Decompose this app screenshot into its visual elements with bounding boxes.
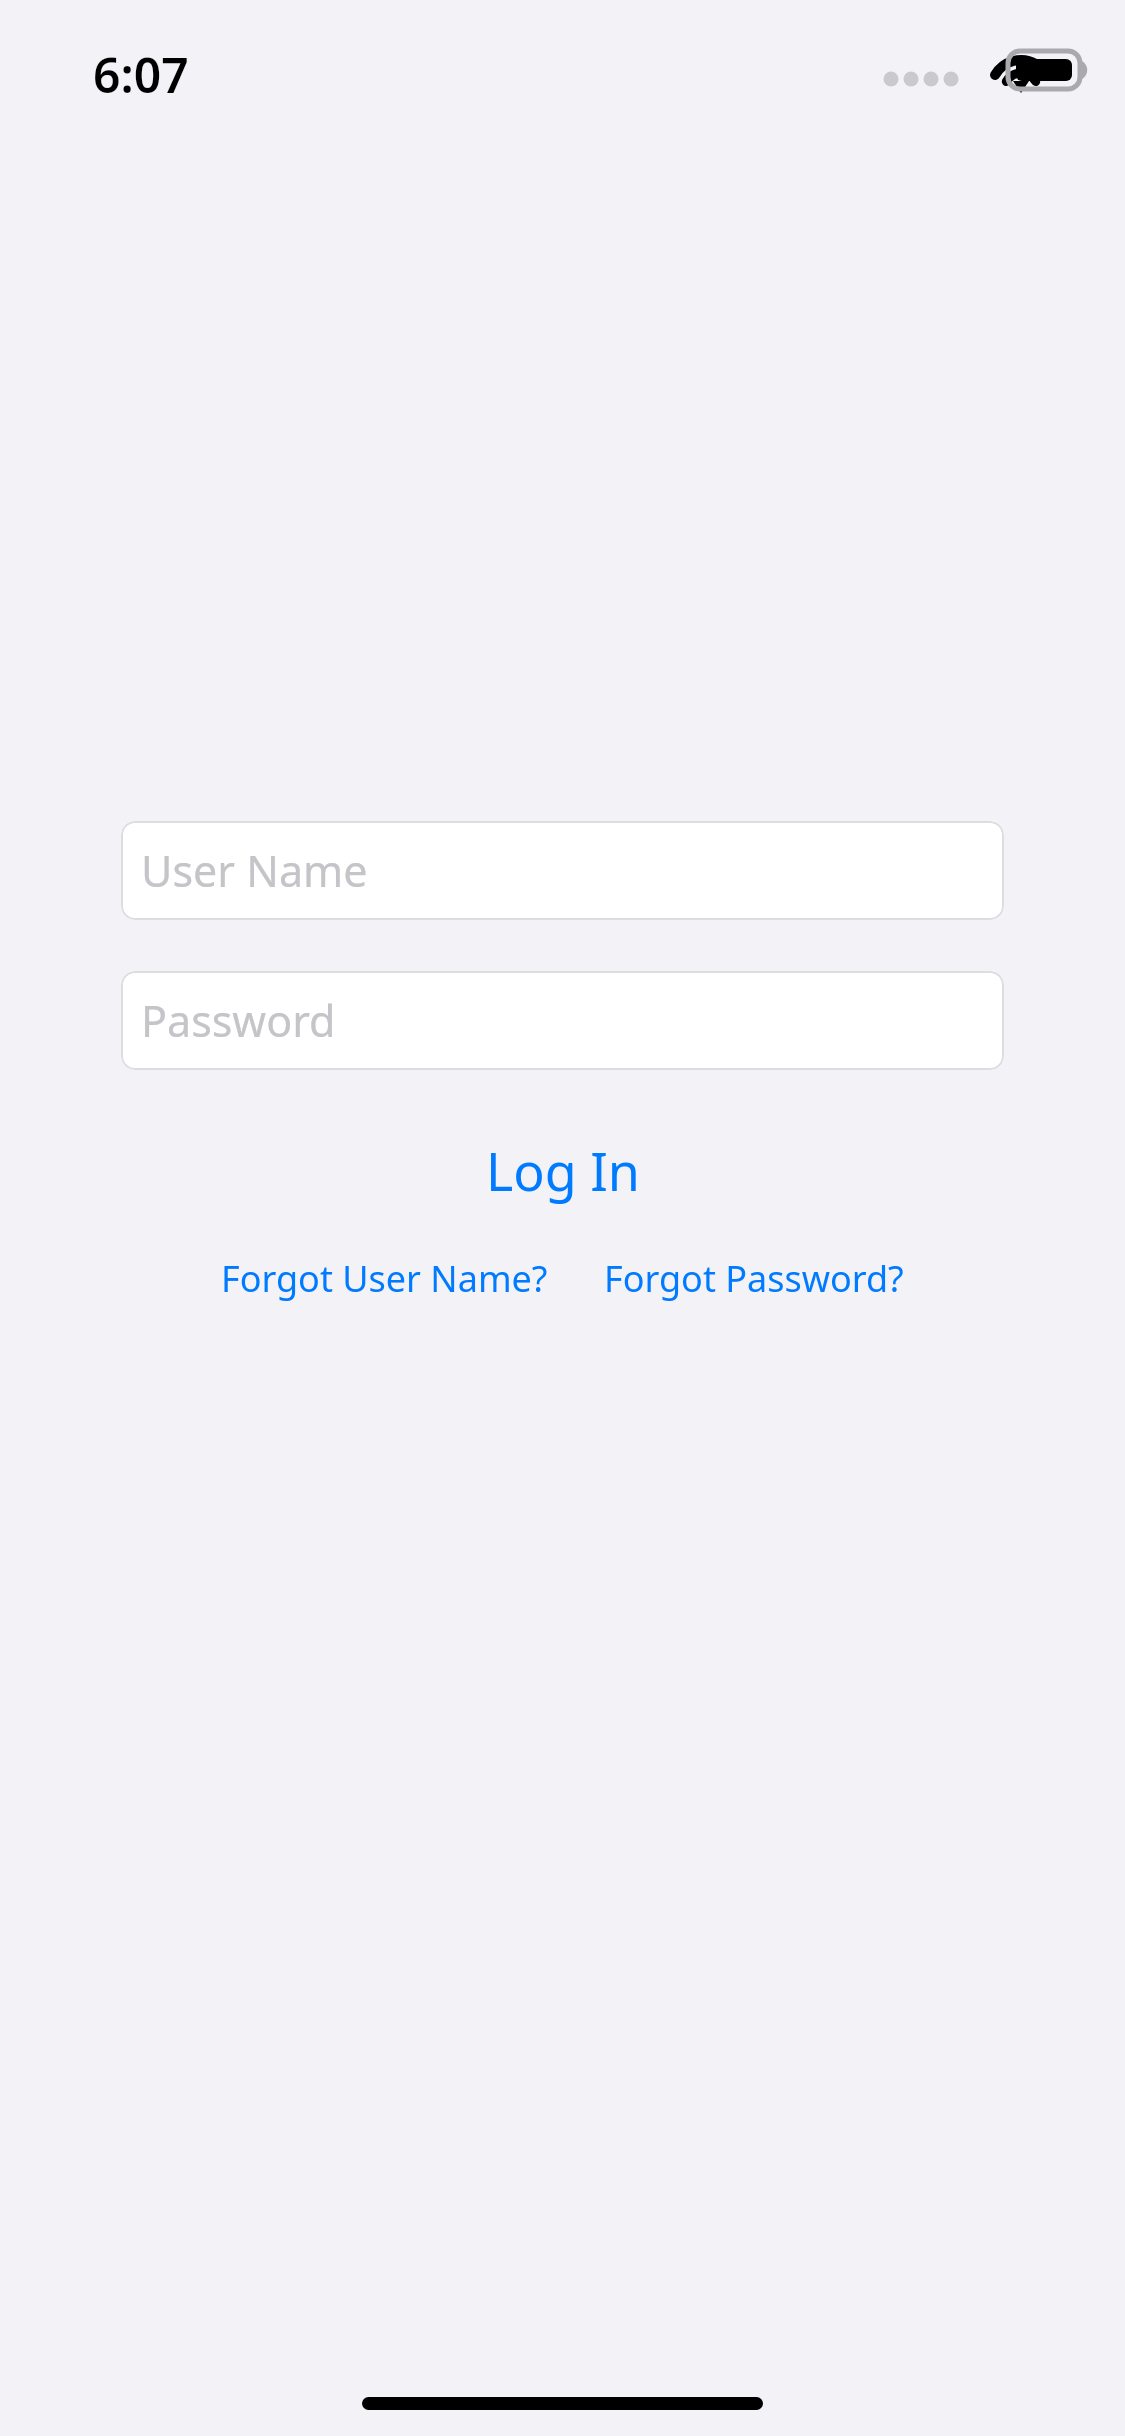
button[interactable]: Log In [353,1130,773,1210]
staticText: 6:07 [93,42,189,107]
staticText: User Name [141,841,368,900]
staticText: Forgot User Name? [221,1254,548,1303]
button[interactable]: User Name [121,821,1004,920]
button[interactable]: Forgot User Name? [215,1248,554,1308]
other: Status icons [875,40,1090,100]
staticText: Log In [486,1135,640,1206]
staticText: Password [141,991,336,1050]
button[interactable]: Password [121,971,1004,1070]
button[interactable]: Forgot Password? [598,1248,910,1308]
staticText: Forgot Password? [604,1254,904,1303]
